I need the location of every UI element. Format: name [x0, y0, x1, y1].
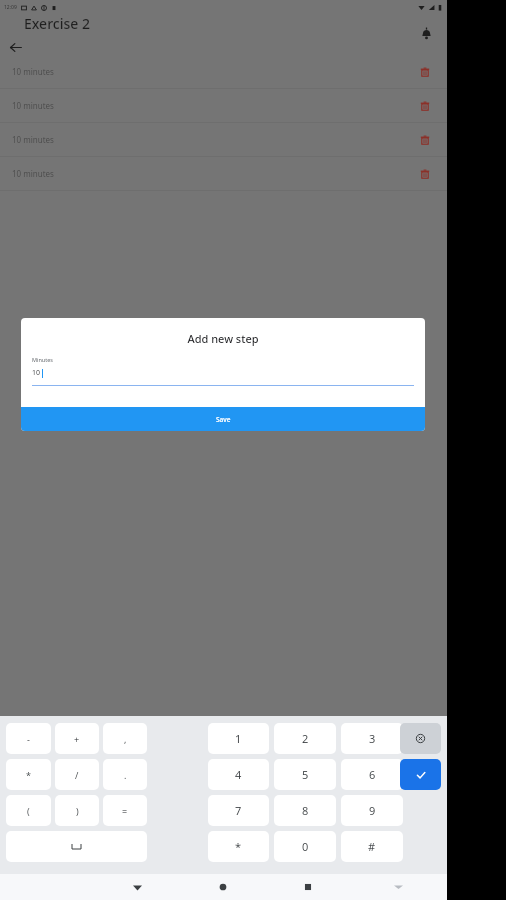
button[interactable]: 10 minutes — [0, 157, 447, 190]
button[interactable]: 2 — [274, 723, 336, 754]
button[interactable]: Hide keyboard — [385, 874, 411, 900]
staticText: 12:09 — [4, 4, 17, 11]
button[interactable]: - — [6, 723, 51, 754]
button[interactable]: 3 — [341, 723, 403, 754]
button[interactable]: 9 — [341, 795, 403, 826]
staticText: 5 — [302, 767, 309, 782]
staticText: 10 minutes — [12, 100, 54, 111]
button[interactable]: Home — [210, 874, 236, 900]
staticText: , — [124, 733, 127, 745]
button[interactable]: + — [55, 723, 99, 754]
staticText: 10 minutes — [12, 66, 54, 77]
button[interactable]: * — [208, 831, 269, 862]
staticText: 8 — [302, 803, 309, 818]
button[interactable]: 7 — [208, 795, 269, 826]
staticText: 2 — [302, 731, 309, 746]
button[interactable]: 10 minutes — [0, 89, 447, 122]
button[interactable]: 5 — [274, 759, 336, 790]
staticText: . — [124, 769, 127, 781]
staticText: + — [74, 733, 80, 745]
button[interactable]: . — [103, 759, 147, 790]
button[interactable]: Back — [4, 36, 26, 58]
staticText: - — [27, 733, 30, 745]
button[interactable]: 1 — [208, 723, 269, 754]
button[interactable]: 10 minutes — [0, 55, 447, 88]
button[interactable]: 4 — [208, 759, 269, 790]
staticText: ( — [27, 805, 30, 817]
button[interactable]: Delete step — [415, 96, 435, 116]
button[interactable]: 8 — [274, 795, 336, 826]
button[interactable]: Space — [6, 831, 147, 862]
staticText: 9 — [369, 803, 376, 818]
button[interactable]: Delete step — [415, 62, 435, 82]
button[interactable]: ) — [55, 795, 99, 826]
button[interactable]: Confirm — [400, 759, 441, 790]
staticText: Minutes — [32, 356, 53, 363]
button[interactable]: Notifications — [415, 22, 437, 44]
staticText: Add new step — [187, 331, 259, 346]
button[interactable]: Delete step — [415, 130, 435, 150]
staticText: Exercise 2 — [24, 14, 90, 33]
button[interactable]: Recent apps — [295, 874, 321, 900]
button[interactable]: # — [341, 831, 403, 862]
staticText: * — [235, 839, 242, 854]
button[interactable]: 10 minutes — [0, 123, 447, 156]
staticText: 10 minutes — [12, 134, 54, 145]
staticText: 0 — [302, 839, 309, 854]
staticText: 4 — [235, 767, 242, 782]
staticText: 1 — [235, 731, 242, 746]
staticText: # — [368, 839, 376, 854]
staticText: Save — [216, 415, 231, 424]
staticText: 3 — [369, 731, 376, 746]
staticText: 7 — [235, 803, 242, 818]
button[interactable]: / — [55, 759, 99, 790]
button[interactable]: * — [6, 759, 51, 790]
button[interactable]: Delete step — [415, 164, 435, 184]
button[interactable]: Back — [124, 874, 150, 900]
button[interactable]: ( — [6, 795, 51, 826]
button[interactable]: = — [103, 795, 147, 826]
button[interactable]: Backspace — [400, 723, 441, 754]
staticText: 10 minutes — [12, 168, 54, 179]
staticText: = — [122, 805, 128, 817]
staticText: 10 — [32, 368, 41, 378]
button[interactable]: , — [103, 723, 147, 754]
button[interactable]: Save — [21, 407, 425, 431]
staticText: * — [26, 769, 31, 781]
staticText: 6 — [369, 767, 376, 782]
button[interactable]: 0 — [274, 831, 336, 862]
button[interactable]: 6 — [341, 759, 403, 790]
staticText: / — [75, 769, 79, 781]
staticText: ) — [76, 805, 79, 817]
